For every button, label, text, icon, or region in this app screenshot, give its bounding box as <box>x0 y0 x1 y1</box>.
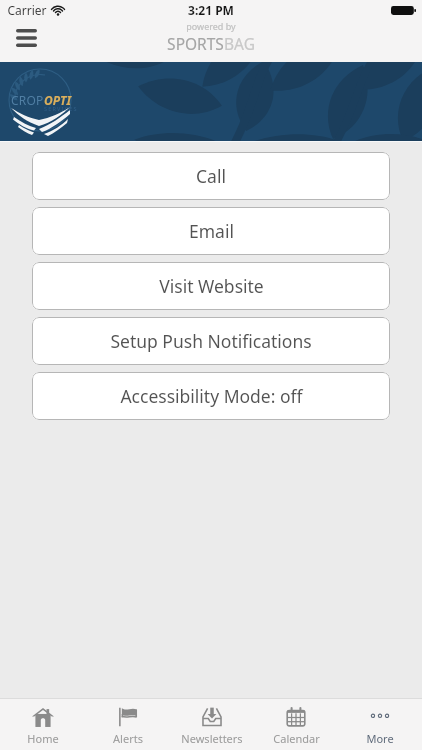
staticText: OPTI <box>44 92 72 108</box>
staticText: Call <box>196 164 226 188</box>
staticText: Accessibility Mode: off <box>120 384 303 408</box>
button[interactable]: Newsletters <box>170 699 254 750</box>
staticText: More <box>366 731 394 746</box>
staticText: SPORTS <box>167 33 224 53</box>
staticText: Email <box>189 219 234 243</box>
button[interactable]: Email <box>32 207 390 255</box>
staticText: CROP <box>11 92 44 108</box>
button[interactable]: Open navigation menu <box>0 20 52 62</box>
staticText: BAG <box>224 33 255 53</box>
staticText: Calendar <box>273 731 320 746</box>
button[interactable]: Setup Push Notifications <box>32 317 390 365</box>
staticText: Visit Website <box>159 274 264 298</box>
button[interactable]: Accessibility Mode: off <box>32 372 390 420</box>
button[interactable]: Visit Website <box>32 262 390 310</box>
staticText: Newsletters <box>181 731 243 746</box>
staticText: Setup Push Notifications <box>110 329 312 353</box>
staticText: SERVICES <box>44 105 78 112</box>
button[interactable]: Alerts <box>85 699 170 750</box>
staticText: powered by <box>186 20 236 32</box>
button[interactable]: More <box>338 699 422 750</box>
button[interactable]: Calendar <box>254 699 338 750</box>
button[interactable]: Home <box>0 699 85 750</box>
staticText: Alerts <box>113 731 143 746</box>
staticText: Home <box>27 731 59 746</box>
staticText: Carrier <box>7 2 47 18</box>
button[interactable]: Call <box>32 152 390 200</box>
staticText: 3:21 PM <box>188 2 234 18</box>
